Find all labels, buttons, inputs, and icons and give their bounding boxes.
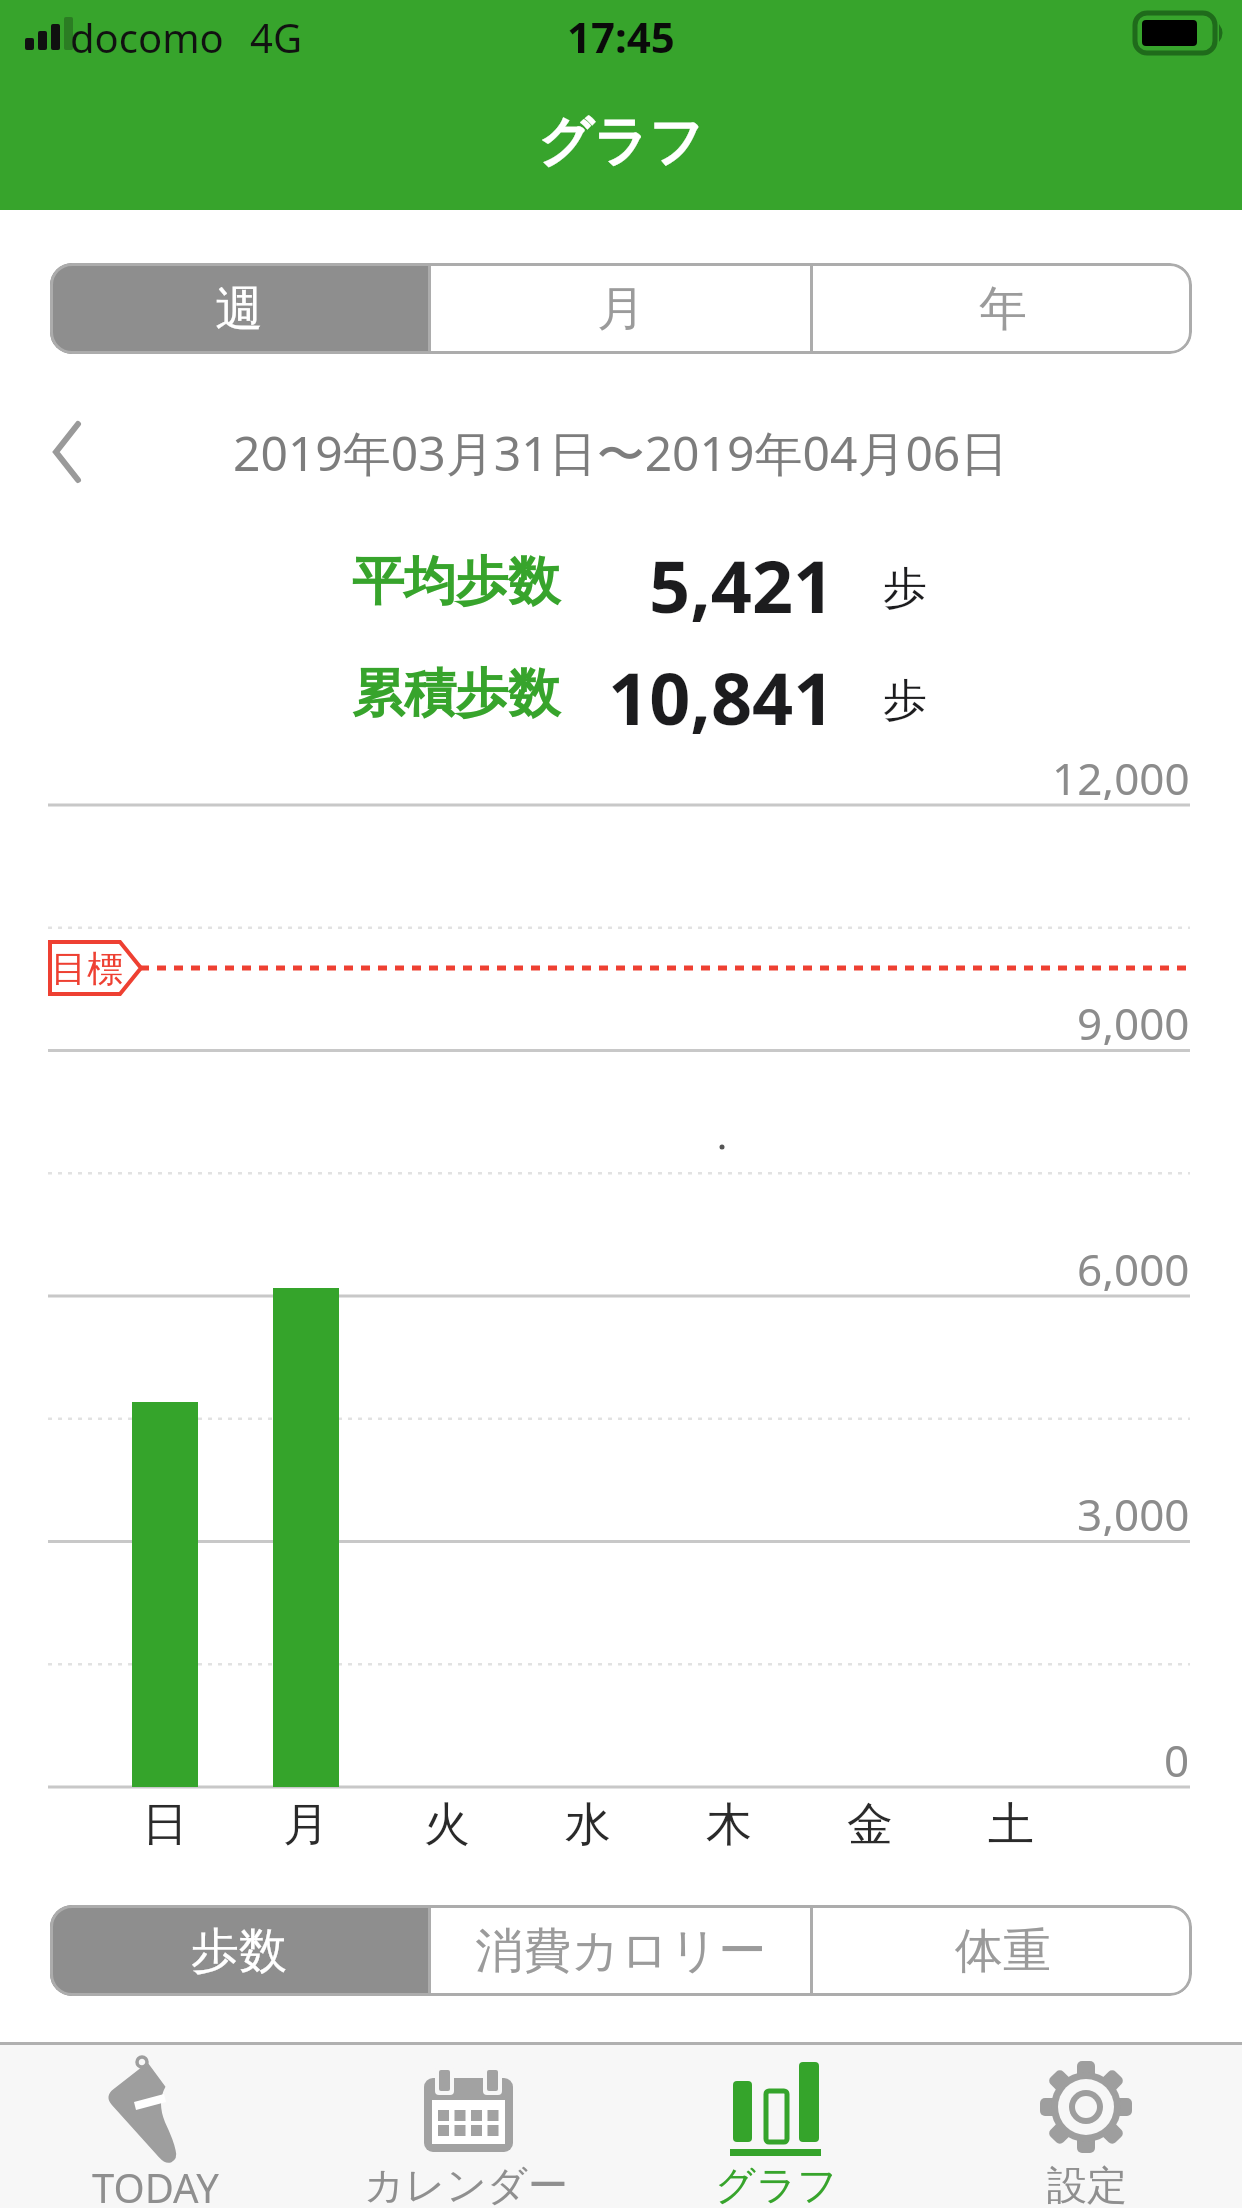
staticText: 水 <box>565 1796 611 1852</box>
staticText: 2019年03月31日〜2019年04月06日 <box>233 420 1009 484</box>
staticText: 0 <box>1164 1730 1190 1782</box>
staticText: 日 <box>142 1796 188 1852</box>
staticText: 累積歩数 <box>352 661 560 727</box>
button[interactable] <box>48 420 88 484</box>
staticText: 火 <box>424 1796 470 1852</box>
staticText: 12,000 <box>1052 748 1190 800</box>
button[interactable]: 週 <box>50 263 428 354</box>
staticText: 歩 <box>883 673 927 728</box>
staticText: 体重 <box>955 1921 1051 1981</box>
staticText: 設定 <box>1047 2160 1127 2208</box>
staticText: グラフ <box>538 108 704 176</box>
staticText: 目標 <box>51 946 123 991</box>
staticText: 週 <box>215 279 263 339</box>
staticText: 歩数 <box>191 1921 287 1981</box>
staticText: 歩 <box>883 561 927 616</box>
staticText: docomo <box>70 10 224 60</box>
staticText: グラフ <box>715 2160 838 2208</box>
staticText: 4G <box>250 10 302 60</box>
staticText: 月 <box>597 279 645 339</box>
button[interactable]: 体重 <box>813 1905 1192 1996</box>
staticText: 9,000 <box>1077 993 1190 1045</box>
staticText: カレンダー <box>364 2160 568 2208</box>
button[interactable]: 歩数 <box>50 1905 428 1996</box>
staticText: TODAY <box>92 2160 219 2208</box>
staticText: 6,000 <box>1077 1239 1190 1291</box>
button[interactable] <box>55 2045 255 2208</box>
staticText: 17:45 <box>567 8 675 60</box>
staticText: 10,841 <box>608 648 835 738</box>
staticText: 土 <box>988 1796 1034 1852</box>
staticText: 金 <box>847 1796 893 1852</box>
button[interactable] <box>366 2045 566 2208</box>
staticText: 消費カロリー <box>475 1921 767 1981</box>
button[interactable]: 消費カロリー <box>431 1905 810 1996</box>
staticText: 平均歩数 <box>352 549 560 615</box>
button[interactable] <box>676 2045 876 2208</box>
button[interactable] <box>987 2045 1187 2208</box>
button[interactable]: 月 <box>431 263 810 354</box>
staticText: 5,421 <box>649 536 835 626</box>
button[interactable]: 年 <box>813 263 1192 354</box>
staticText: 3,000 <box>1077 1484 1190 1536</box>
staticText: 月 <box>283 1796 329 1852</box>
staticText: 木 <box>706 1796 752 1852</box>
staticText: 年 <box>979 279 1027 339</box>
